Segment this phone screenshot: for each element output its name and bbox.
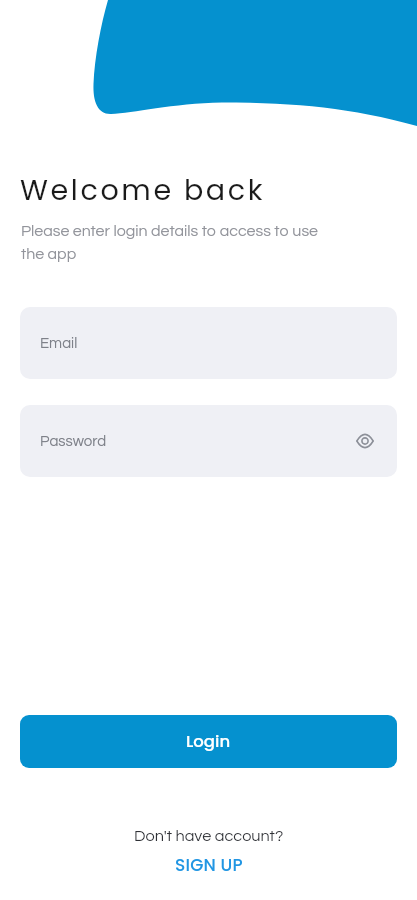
staticText: Password xyxy=(40,434,107,449)
button[interactable]: Password xyxy=(20,405,397,477)
staticText: Email xyxy=(40,336,78,351)
button[interactable]: Email xyxy=(20,307,397,379)
staticText: Don't have account? xyxy=(134,828,284,845)
staticText: SIGN UP xyxy=(175,853,243,877)
button[interactable]: Login xyxy=(20,715,397,768)
staticText: Login xyxy=(186,730,231,753)
button[interactable]: Show password xyxy=(350,426,380,456)
staticText: Please enter login details to access to … xyxy=(21,223,343,263)
staticText: Welcome back xyxy=(20,170,266,210)
button[interactable]: SIGN UP xyxy=(163,849,255,881)
